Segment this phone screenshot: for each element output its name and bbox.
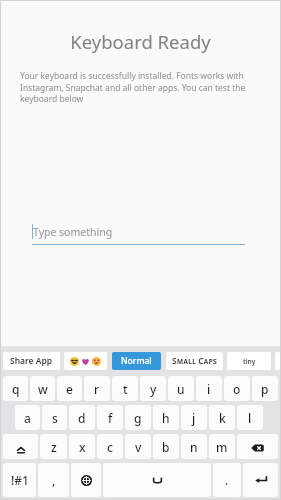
staticText: !#1: [11, 472, 29, 488]
staticText: b: [162, 439, 170, 455]
button[interactable]: !#1: [3, 463, 36, 497]
button[interactable]: j: [181, 405, 207, 430]
staticText: z: [51, 439, 57, 455]
staticText: y: [150, 381, 157, 397]
staticText: ,: [52, 472, 56, 488]
button[interactable]: f: [97, 405, 123, 430]
staticText: e: [66, 381, 73, 397]
staticText: t: [123, 381, 128, 397]
button[interactable]: a: [15, 405, 40, 430]
button[interactable]: w: [30, 376, 55, 401]
button[interactable]: Space: [103, 463, 211, 497]
button[interactable]: r: [84, 376, 110, 401]
staticText: c: [107, 439, 113, 455]
staticText: d: [78, 410, 86, 426]
button[interactable]: q: [3, 376, 28, 401]
staticText: Normal: [121, 355, 152, 367]
button[interactable]: Change language: [71, 463, 101, 497]
staticText: h: [162, 410, 170, 426]
button[interactable]: .: [213, 463, 241, 497]
staticText: .: [225, 472, 229, 488]
button[interactable]: Emojis: [64, 352, 107, 370]
staticText: p: [261, 381, 269, 397]
staticText: k: [219, 410, 226, 426]
button[interactable]: h: [153, 405, 179, 430]
staticText: n: [190, 439, 198, 455]
button[interactable]: x: [69, 434, 95, 459]
staticText: s: [52, 410, 58, 426]
staticText: j: [192, 410, 196, 426]
staticText: g: [134, 410, 142, 426]
staticText: Keyboard Ready: [0, 29, 281, 54]
button[interactable]: c: [97, 434, 123, 459]
staticText: i: [207, 381, 211, 397]
button[interactable]: o: [224, 376, 250, 401]
button[interactable]: u: [168, 376, 194, 401]
staticText: a: [24, 410, 31, 426]
staticText: tiny: [243, 357, 256, 366]
button[interactable]: l: [237, 405, 263, 430]
staticText: v: [135, 439, 142, 455]
button[interactable]: ,: [38, 463, 69, 497]
staticText: Type something: [33, 225, 113, 239]
staticText: Share App: [10, 355, 53, 367]
button[interactable]: More styles: [275, 352, 281, 370]
staticText: u: [177, 381, 185, 397]
staticText: o: [233, 381, 241, 397]
button[interactable]: n: [181, 434, 207, 459]
staticText: x: [79, 439, 86, 455]
staticText: m: [216, 439, 228, 455]
button[interactable]: Shift: [3, 434, 38, 459]
button[interactable]: i: [196, 376, 222, 401]
button[interactable]: s: [42, 405, 67, 430]
button[interactable]: k: [209, 405, 235, 430]
button[interactable]: Normal: [112, 352, 161, 370]
staticText: q: [12, 381, 20, 397]
staticText: w: [38, 381, 48, 397]
staticText: r: [94, 381, 100, 397]
button[interactable]: d: [69, 405, 95, 430]
button[interactable]: e: [57, 376, 82, 401]
staticText: f: [108, 410, 113, 426]
button[interactable]: t: [112, 376, 138, 401]
button[interactable]: b: [153, 434, 179, 459]
staticText: Your keyboard is successfully installed.…: [20, 70, 248, 104]
button[interactable]: y: [140, 376, 166, 401]
button[interactable]: Backspace: [237, 434, 278, 459]
button[interactable]: tiny: [227, 352, 271, 370]
button[interactable]: m: [209, 434, 235, 459]
button[interactable]: Sᴍᴀʟʟ Cᴀᴘs: [166, 352, 223, 370]
staticText: l: [248, 410, 252, 426]
button[interactable]: z: [40, 434, 67, 459]
button[interactable]: g: [125, 405, 151, 430]
button[interactable]: v: [125, 434, 151, 459]
button[interactable]: Share App: [3, 352, 60, 370]
staticText: Sᴍᴀʟʟ Cᴀᴘs: [172, 355, 217, 367]
button[interactable]: p: [252, 376, 278, 401]
button[interactable]: Enter: [243, 463, 278, 497]
